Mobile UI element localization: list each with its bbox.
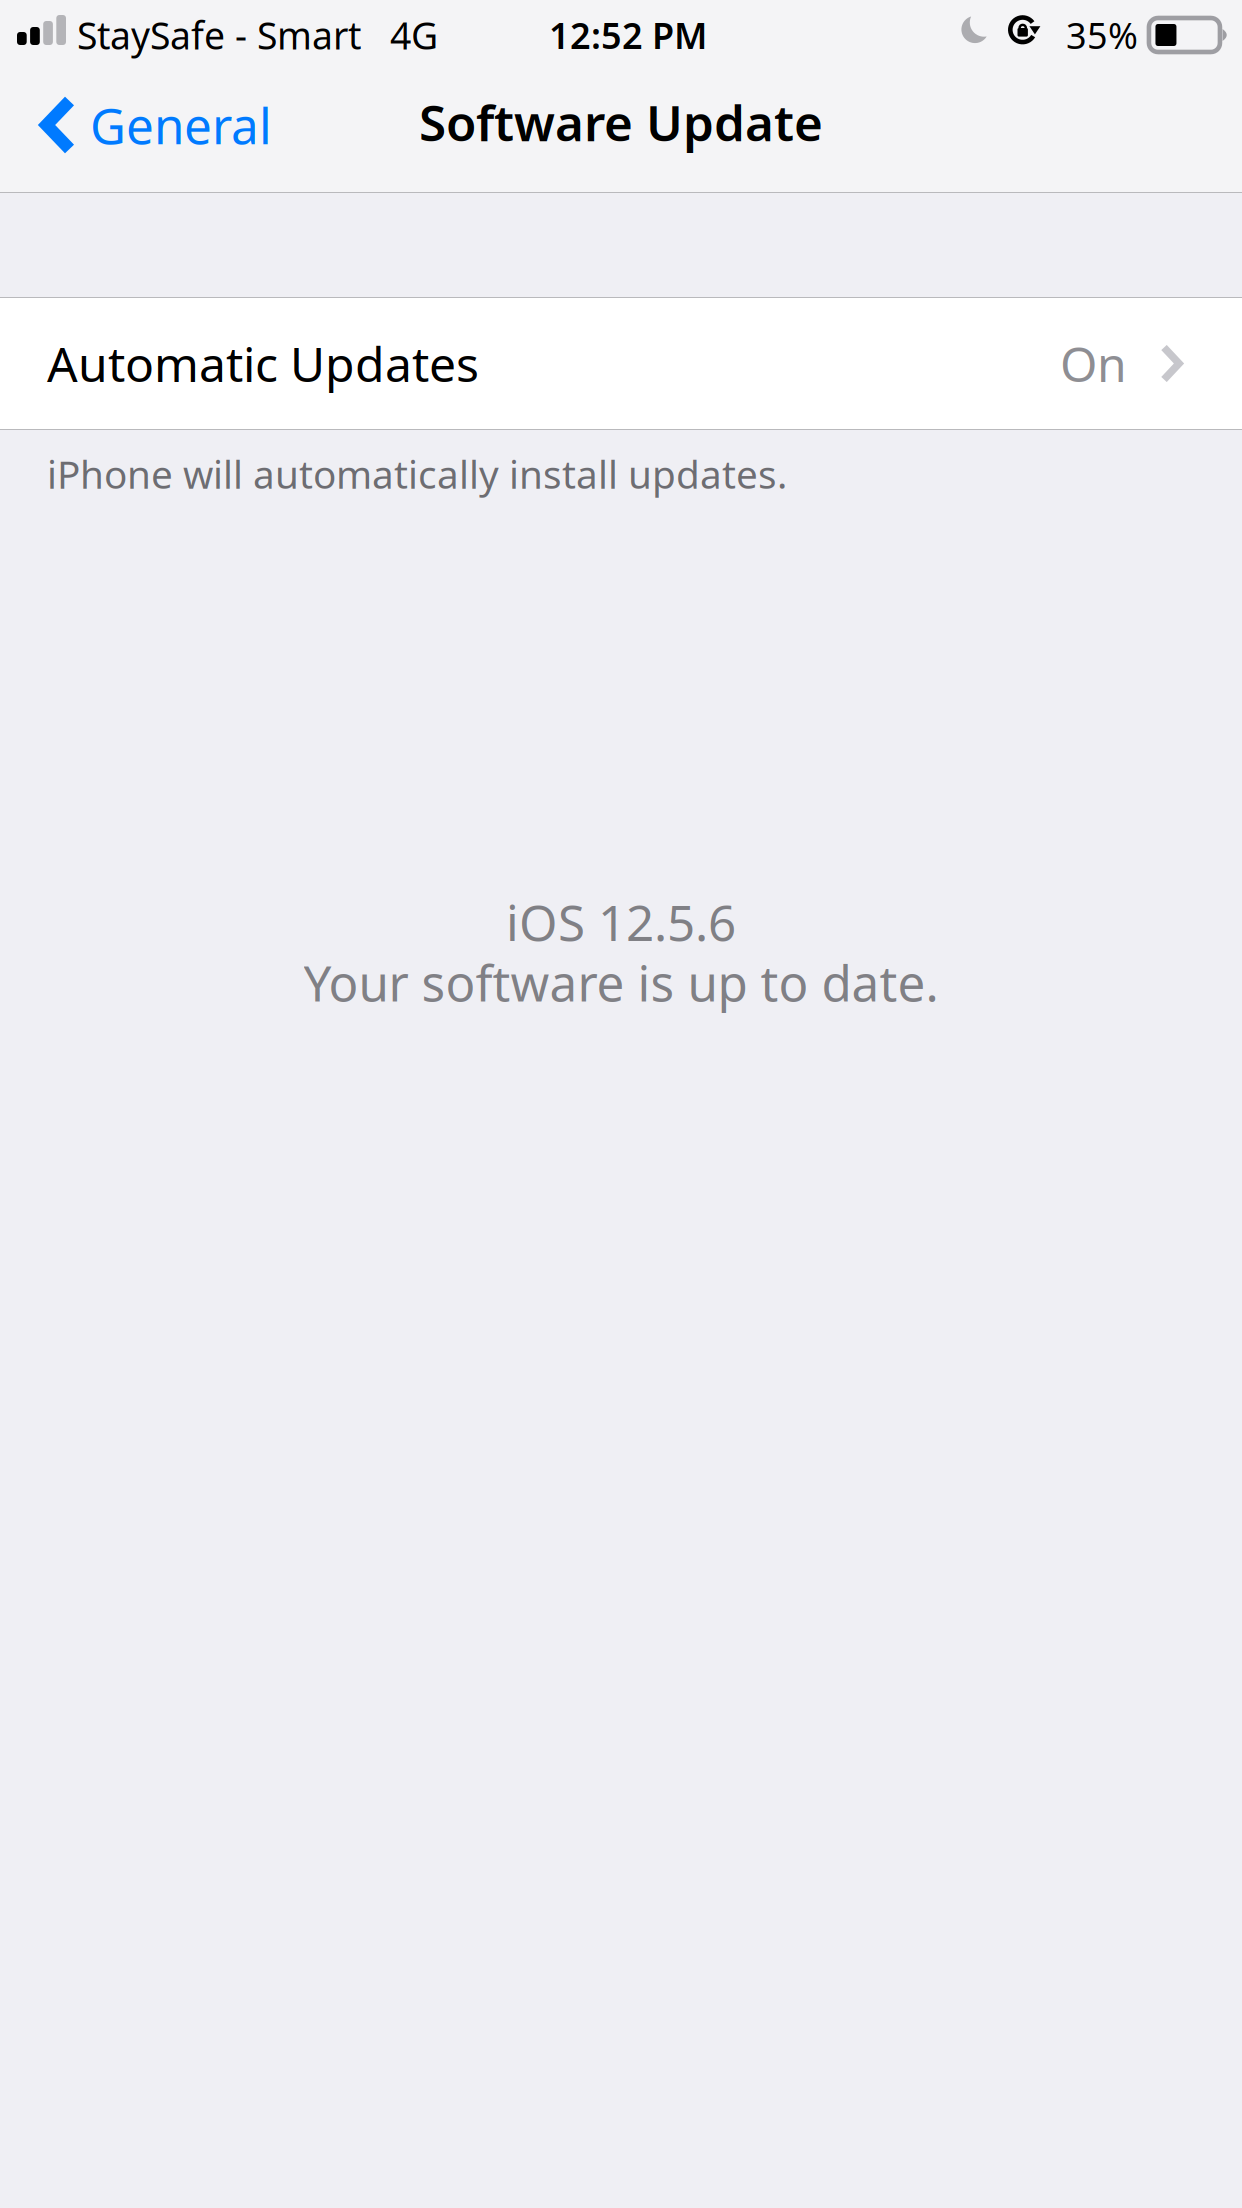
staticText: 12:52 PM	[549, 11, 707, 59]
staticText: iOS 12.5.6	[506, 889, 736, 954]
staticText: Your software is up to date.	[303, 949, 938, 1015]
staticText: Software Update	[419, 89, 823, 155]
button[interactable]: Automatic Updates	[0, 298, 1242, 429]
staticText: Automatic Updates	[47, 332, 479, 395]
staticText: 35%	[1066, 11, 1138, 59]
staticText: 4G	[390, 10, 438, 60]
staticText: General	[90, 92, 272, 158]
staticText: StaySafe - Smart	[77, 10, 361, 60]
staticText: On	[1060, 332, 1127, 395]
button[interactable]: General	[0, 70, 296, 192]
staticText: iPhone will automatically install update…	[47, 448, 787, 499]
